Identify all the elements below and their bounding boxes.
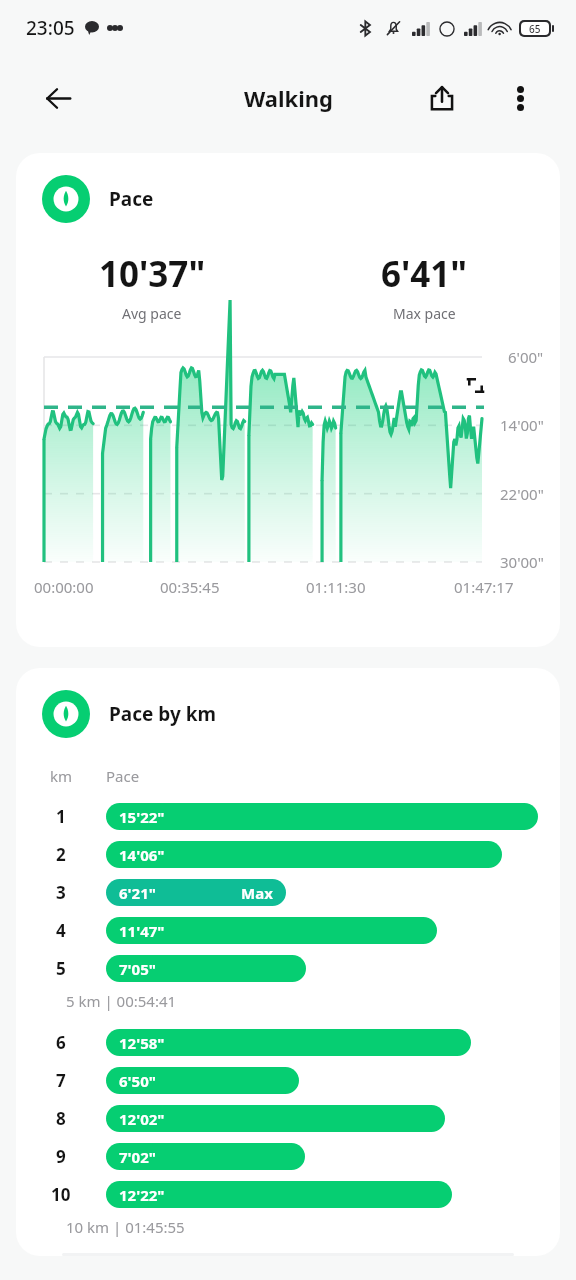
button[interactable]: Pace by km	[16, 668, 560, 1256]
button[interactable]: Back	[32, 72, 84, 124]
button[interactable]: More options	[494, 72, 546, 124]
staticText: 01:47:17	[454, 577, 514, 597]
staticText: Pace by km	[109, 701, 216, 727]
staticText: 30'00"	[500, 552, 544, 572]
button[interactable]: 15'22"	[106, 803, 538, 830]
staticText: 65	[529, 22, 541, 35]
staticText: 3	[56, 881, 66, 904]
button[interactable]: 6'21"	[106, 879, 286, 906]
staticText: 10 km | 01:45:55	[66, 1217, 185, 1237]
button[interactable]: 7'05"	[106, 955, 306, 982]
staticText: 5	[56, 957, 66, 980]
staticText: Pace	[109, 186, 154, 212]
staticText: 6'21"	[119, 883, 156, 903]
staticText: 2	[56, 843, 66, 866]
button[interactable]: 12'02"	[106, 1105, 445, 1132]
staticText: 22'00"	[500, 484, 544, 504]
button[interactable]: 14'06"	[106, 841, 502, 868]
staticText: Pace	[106, 766, 140, 786]
staticText: 6'50"	[119, 1071, 156, 1091]
button[interactable]: 12'58"	[106, 1029, 471, 1056]
staticText: 01:11:30	[306, 577, 366, 597]
staticText: 14'06"	[119, 845, 165, 865]
staticText: 23:05	[26, 15, 75, 41]
button[interactable]: 7'02"	[106, 1143, 305, 1170]
staticText: 00:00:00	[34, 577, 94, 597]
staticText: 7'05"	[119, 959, 156, 979]
button[interactable]: Pace	[16, 153, 560, 647]
staticText: 6	[56, 1031, 66, 1054]
button[interactable]: Share	[416, 72, 468, 124]
button[interactable]: 12'22"	[106, 1181, 452, 1208]
staticText: 11'47"	[119, 921, 165, 941]
button[interactable]: 11'47"	[106, 917, 437, 944]
staticText: 1	[56, 805, 66, 828]
staticText: 10	[51, 1183, 71, 1206]
staticText: 6'41"	[381, 250, 468, 298]
staticText: Max	[241, 883, 273, 903]
staticText: 12'58"	[119, 1033, 165, 1053]
staticText: 9	[56, 1145, 66, 1168]
staticText: 10'37"	[99, 250, 206, 298]
staticText: 00:35:45	[160, 577, 220, 597]
staticText: 5 km | 00:54:41	[66, 991, 177, 1011]
staticText: 14'00"	[500, 415, 544, 435]
staticText: 4	[56, 919, 66, 942]
button[interactable]: Expand chart	[456, 366, 494, 404]
staticText: km	[50, 766, 73, 786]
staticText: 7	[56, 1069, 66, 1092]
staticText: 7'02"	[119, 1147, 156, 1167]
staticText: 6'00"	[508, 347, 544, 367]
staticText: 8	[56, 1107, 66, 1130]
staticText: Max pace	[393, 304, 456, 323]
staticText: Avg pace	[122, 304, 182, 323]
staticText: 12'22"	[119, 1185, 165, 1205]
staticText: Walking	[244, 83, 333, 113]
staticText: 15'22"	[119, 807, 165, 827]
button[interactable]: 6'50"	[106, 1067, 299, 1094]
staticText: 12'02"	[119, 1109, 165, 1129]
